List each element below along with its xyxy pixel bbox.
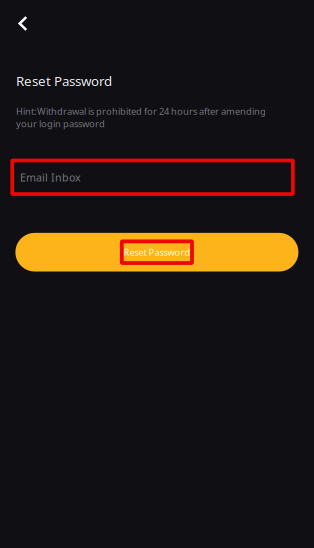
staticText: Reset Password [123, 246, 190, 258]
staticText: Reset Password [16, 72, 112, 90]
staticText: Hint:Withdrawal is prohibited for 24 hou… [16, 105, 266, 130]
button[interactable]: Reset Password [15, 233, 298, 271]
staticText: Email Inbox [20, 170, 81, 184]
button[interactable]: Email Inbox [12, 159, 297, 196]
button[interactable]: Back [7, 8, 39, 40]
